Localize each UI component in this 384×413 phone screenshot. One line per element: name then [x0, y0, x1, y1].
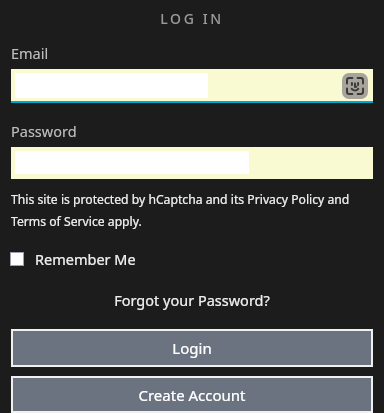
staticText: LOG IN — [0, 9, 384, 28]
staticText: Terms of Service apply. — [11, 213, 142, 230]
button[interactable]: Create Account — [13, 378, 371, 411]
button[interactable]: Remember Me — [10, 249, 136, 269]
staticText: Login — [172, 338, 212, 358]
button[interactable] — [11, 147, 373, 179]
staticText: Forgot your Password? — [114, 290, 270, 310]
button[interactable]: Login — [13, 331, 371, 365]
button[interactable]: Face ID sign in — [11, 69, 373, 103]
staticText: Create Account — [138, 385, 246, 405]
staticText: This site is protected by hCaptcha and i… — [11, 191, 350, 208]
button[interactable]: Face ID sign in — [342, 73, 368, 99]
staticText: Email — [11, 43, 49, 63]
staticText: Remember Me — [35, 249, 136, 269]
button[interactable]: Forgot your Password? — [0, 290, 384, 310]
staticText: Password — [11, 121, 77, 141]
